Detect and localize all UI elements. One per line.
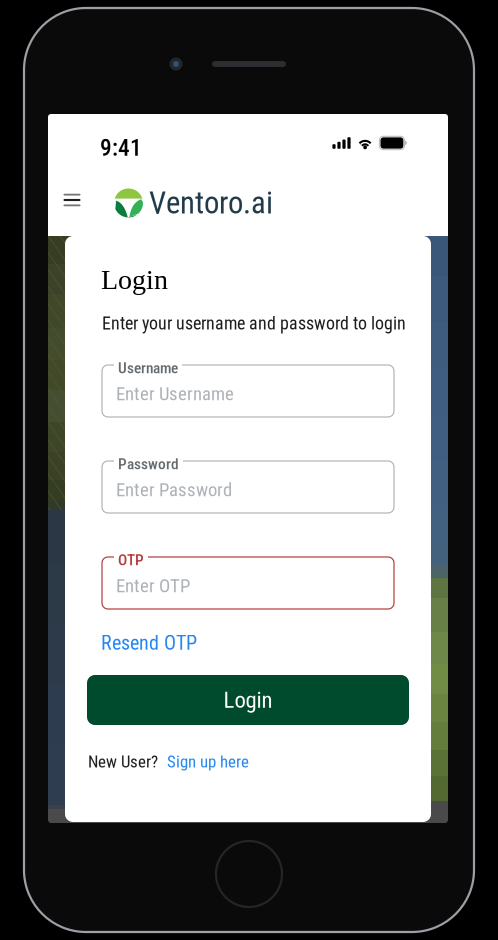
staticText: Login	[101, 264, 168, 295]
button[interactable]: Open menu	[55, 183, 89, 217]
staticText: New User?	[88, 752, 158, 772]
staticText: OTP	[118, 551, 144, 569]
staticText: Username	[118, 359, 178, 377]
staticText: Enter Password	[116, 479, 232, 501]
staticText: Login	[223, 687, 272, 713]
staticText: 9:41	[100, 134, 142, 161]
staticText: Enter Username	[116, 383, 234, 405]
button[interactable]: Ventoro.ai	[114, 185, 273, 221]
staticText: Ventoro.ai	[149, 185, 273, 221]
button[interactable]: Resend OTP	[101, 631, 197, 655]
staticText: Enter OTP	[116, 575, 190, 597]
staticText: Sign up here	[167, 752, 249, 772]
staticText: Password	[118, 455, 179, 473]
staticText: Enter your username and password to logi…	[102, 313, 406, 334]
staticText: Resend OTP	[101, 631, 197, 655]
button[interactable]: Login	[87, 675, 409, 725]
button[interactable]: Sign up here	[167, 752, 249, 772]
